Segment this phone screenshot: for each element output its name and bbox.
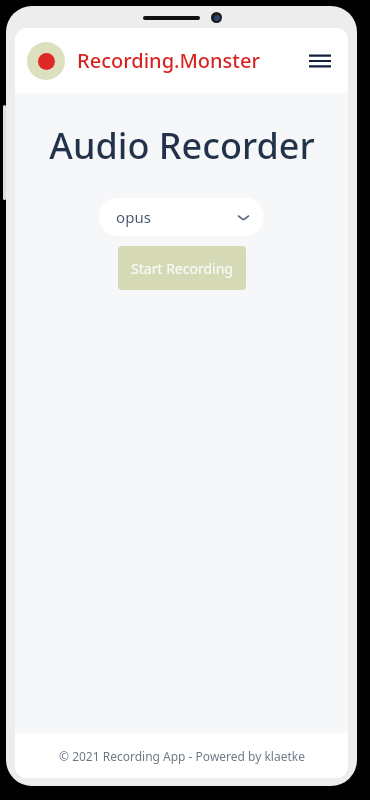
button[interactable]: Recording.Monster <box>77 28 298 93</box>
button[interactable] <box>27 42 65 80</box>
button[interactable]: Start Recording <box>118 246 246 290</box>
staticText: © 2021 Recording App - Powered by klaetk… <box>59 748 305 764</box>
staticText: Start Recording <box>131 259 233 278</box>
button[interactable]: Open menu <box>298 39 342 83</box>
staticText: Recording.Monster <box>77 47 260 74</box>
button[interactable]: opus <box>99 198 264 236</box>
staticText: Audio Recorder <box>49 121 315 170</box>
staticText: opus <box>116 207 151 227</box>
